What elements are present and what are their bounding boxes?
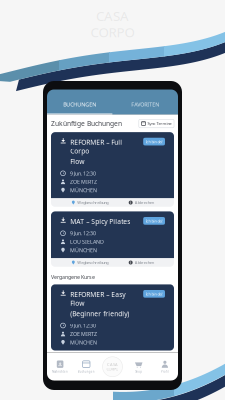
button[interactable]: MAT – Spicy Pilates xyxy=(51,211,174,267)
staticText: Shop xyxy=(135,370,142,373)
staticText: REFORMER – Full Corpo xyxy=(70,138,122,155)
button[interactable]: Casa Corpo Home xyxy=(99,357,126,377)
button[interactable]: BUCHUNGEN xyxy=(47,89,112,114)
staticText: 9 Jun. 12:30 xyxy=(70,322,96,329)
staticText: BUCHUNGEN xyxy=(63,101,96,108)
staticText: Ich bin da! xyxy=(146,291,163,296)
staticText: Flow xyxy=(70,157,84,166)
staticText: Wegbeschreibung xyxy=(77,260,108,265)
staticText: ZOE MIRTZ xyxy=(70,330,97,337)
staticText: Vergangene Kurse xyxy=(51,273,95,280)
staticText: MAT – Spicy Pilates xyxy=(70,217,130,226)
button[interactable]: Buchungen xyxy=(73,360,99,373)
staticText: FAVORITEN xyxy=(131,101,159,108)
staticText: Abbrechen xyxy=(135,200,154,205)
staticText: CASA xyxy=(107,362,118,367)
staticText: Ich bin da! xyxy=(146,218,163,223)
staticText: Nachrichten xyxy=(52,370,68,373)
staticText: Profil xyxy=(161,370,169,373)
button[interactable]: Shop xyxy=(126,360,152,373)
staticText: 9 Jun. 12:30 xyxy=(70,170,96,177)
staticText: CORPO xyxy=(106,366,118,372)
staticText: CASA xyxy=(96,7,129,25)
staticText: MÜNCHEN xyxy=(70,246,97,254)
button[interactable]: Nachrichten xyxy=(47,360,73,373)
staticText: MÜNCHEN xyxy=(70,339,97,346)
staticText: REFORMER – Easy Flow xyxy=(70,290,125,308)
staticText: Wegbeschreibung xyxy=(77,200,108,205)
staticText: Ich bin da! xyxy=(146,139,163,144)
staticText: MÜNCHEN xyxy=(70,187,97,194)
button[interactable]: REFORMER – Easy Flow xyxy=(51,284,174,351)
staticText: Zukünftige Buchungen xyxy=(51,119,122,128)
button[interactable]: REFORMER – Full Corpo xyxy=(51,132,174,207)
staticText: Buchungen xyxy=(78,370,95,373)
button[interactable]: Sync Termine xyxy=(139,119,174,128)
staticText: (Beginner friendly) xyxy=(70,309,129,318)
staticText: 9 Jun. 12:30 xyxy=(70,230,96,237)
staticText: Abbrechen xyxy=(135,260,154,265)
button[interactable]: Profil xyxy=(152,360,178,373)
staticText: Sync Termine xyxy=(147,121,171,126)
button[interactable]: FAVORITEN xyxy=(112,89,178,114)
staticText: ZOE MIRTZ xyxy=(70,178,97,185)
staticText: CORPO xyxy=(90,23,134,41)
staticText: LOU SIELAND xyxy=(70,238,104,245)
